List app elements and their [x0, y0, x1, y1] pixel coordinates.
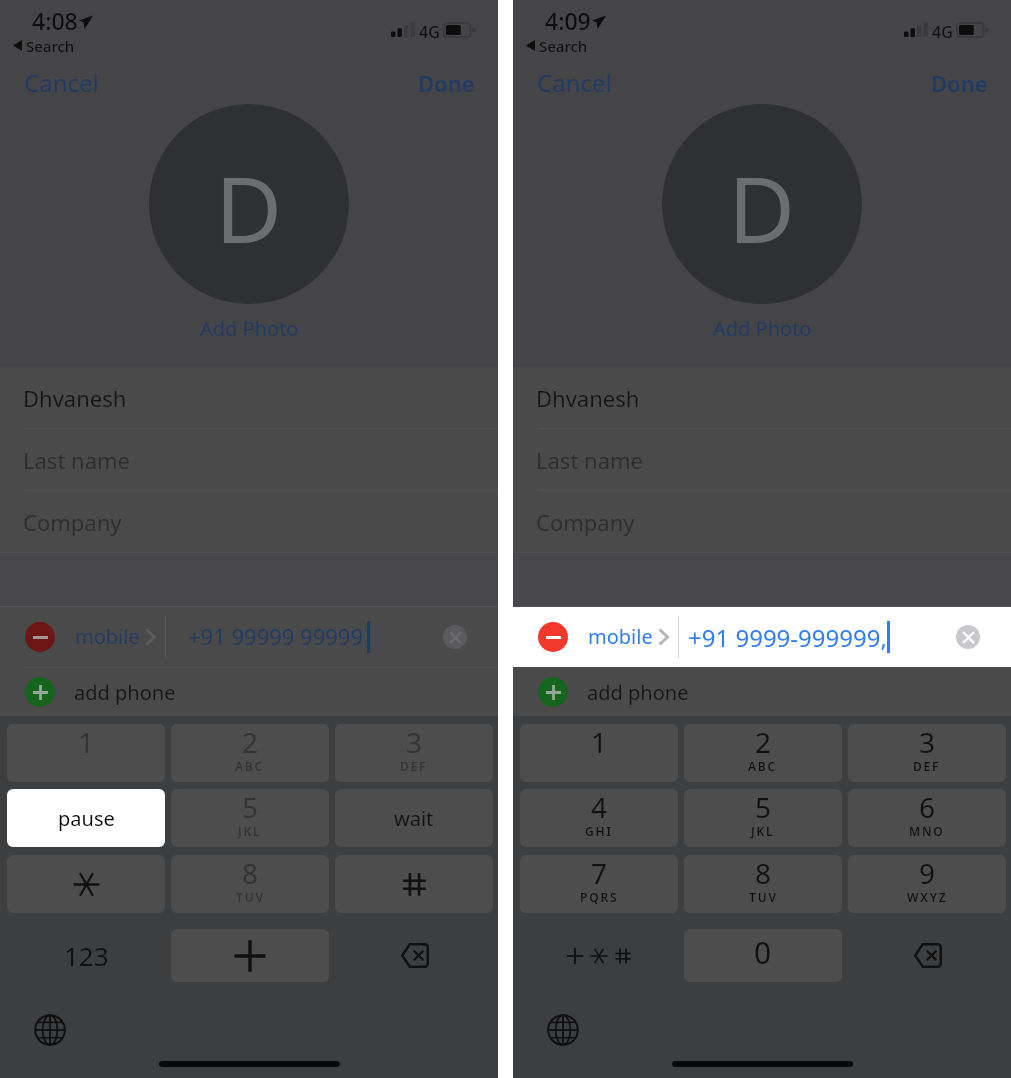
staticText: +91 99999 99999 — [188, 621, 364, 651]
staticText: 2 — [755, 724, 772, 761]
staticText: JKL — [751, 823, 775, 839]
staticText: add phone — [74, 679, 176, 706]
button[interactable]: Done — [406, 62, 487, 104]
button[interactable]: Star — [7, 855, 165, 913]
staticText: 4:08 — [32, 5, 78, 36]
staticText: D — [215, 145, 283, 270]
staticText: Search — [539, 36, 588, 56]
staticText: 6 — [919, 789, 936, 826]
staticText: 8 — [755, 855, 772, 892]
staticText: MNO — [909, 823, 945, 839]
button[interactable]: Delete — [335, 929, 493, 982]
staticText: 5 — [242, 789, 259, 826]
button[interactable]: Company — [0, 491, 498, 553]
button[interactable]: Remove phone — [25, 622, 55, 652]
staticText: Last name — [536, 445, 643, 475]
staticText: DEF — [913, 758, 941, 774]
staticText: TUV — [236, 889, 265, 905]
button[interactable]: Change keyboard — [34, 1014, 66, 1046]
button[interactable]: Last name — [513, 429, 1011, 491]
button[interactable]: Dhvanesh — [513, 367, 1011, 429]
staticText: DEF — [400, 758, 428, 774]
button[interactable]: Dhvanesh — [0, 367, 498, 429]
staticText: Dhvanesh — [536, 383, 640, 413]
button[interactable]: 6 — [848, 789, 1006, 847]
button[interactable]: 5 — [171, 789, 329, 847]
staticText: 3 — [406, 724, 423, 761]
staticText: 123 — [64, 938, 109, 973]
button[interactable]: 3 — [335, 724, 493, 782]
staticText: 4G — [419, 21, 440, 43]
staticText: WXYZ — [907, 889, 948, 905]
button[interactable]: Delete — [848, 929, 1006, 982]
staticText: mobile — [75, 623, 140, 650]
staticText: 1 — [591, 724, 608, 761]
button[interactable]: 1 — [520, 724, 678, 782]
button[interactable]: 2 — [171, 724, 329, 782]
button[interactable]: Add Photo — [513, 314, 1011, 342]
staticText: wait — [394, 805, 434, 832]
staticText: 4:09 — [545, 5, 591, 36]
button[interactable]: 8 — [684, 855, 842, 913]
staticText: Search — [26, 36, 75, 56]
button[interactable]: Add Photo — [0, 314, 498, 342]
button[interactable]: Cancel — [525, 60, 624, 105]
button[interactable]: Remove phone — [0, 607, 498, 667]
button[interactable]: Remove phone — [513, 607, 1011, 667]
button[interactable] — [171, 929, 329, 982]
button[interactable]: Add photo — [149, 104, 349, 304]
staticText: D — [728, 145, 796, 270]
staticText: +91 9999-999999, — [688, 621, 887, 654]
staticText: 4 — [591, 789, 608, 826]
button[interactable]: Cancel — [12, 60, 111, 105]
staticText: Last name — [23, 445, 130, 475]
staticText: Done — [418, 68, 475, 98]
button[interactable]: Symbols — [520, 929, 678, 982]
button[interactable]: wait — [335, 789, 493, 847]
staticText: 2 — [242, 724, 259, 761]
button[interactable]: Remove phone — [538, 622, 568, 652]
staticText: Company — [23, 507, 122, 537]
button[interactable]: 0 — [684, 929, 842, 982]
staticText: 0 — [754, 932, 772, 973]
staticText: 8 — [242, 855, 259, 892]
staticText: Cancel — [24, 66, 99, 99]
staticText: add phone — [587, 679, 689, 706]
button[interactable]: Company — [513, 491, 1011, 553]
button[interactable]: Last name — [0, 429, 498, 491]
button[interactable]: add phone — [0, 667, 498, 716]
staticText: JKL — [238, 823, 262, 839]
button[interactable]: Numbers — [7, 929, 165, 982]
button[interactable]: 2 — [684, 724, 842, 782]
button[interactable]: Hash — [335, 855, 493, 913]
button[interactable]: Clear text — [956, 625, 980, 649]
staticText: ABC — [748, 758, 778, 774]
button[interactable]: Change keyboard — [547, 1014, 579, 1046]
staticText: 9 — [919, 855, 936, 892]
button[interactable]: 9 — [848, 855, 1006, 913]
staticText: GHI — [585, 823, 613, 839]
button[interactable]: add phone — [513, 667, 1011, 716]
button[interactable]: Add photo — [662, 104, 862, 304]
staticText: 4G — [932, 21, 953, 43]
staticText: Done — [931, 68, 988, 98]
staticText: pause — [58, 805, 115, 832]
button[interactable]: 4 — [520, 789, 678, 847]
button[interactable]: 8 — [171, 855, 329, 913]
button[interactable]: Clear text — [443, 625, 467, 649]
button[interactable]: Done — [919, 62, 1000, 104]
button[interactable]: 3 — [848, 724, 1006, 782]
staticText: 3 — [919, 724, 936, 761]
button[interactable]: 5 — [684, 789, 842, 847]
staticText: PQRS — [580, 889, 619, 905]
staticText: Company — [536, 507, 635, 537]
staticText: mobile — [588, 623, 653, 650]
button[interactable]: 7 — [520, 855, 678, 913]
staticText: 1 — [78, 724, 95, 761]
staticText: 5 — [755, 789, 772, 826]
button[interactable]: pause — [7, 789, 165, 847]
staticText: ABC — [235, 758, 265, 774]
staticText: TUV — [749, 889, 778, 905]
staticText: 7 — [591, 855, 608, 892]
